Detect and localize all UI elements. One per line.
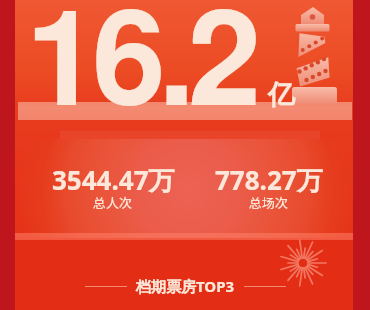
- staticText: 总人次: [93, 193, 133, 212]
- staticText: 778.27万: [215, 162, 323, 198]
- staticText: 档期票房TOP3: [136, 276, 235, 296]
- staticText: 总场次: [249, 193, 289, 212]
- staticText: 3544.47万: [52, 162, 175, 198]
- staticText: 16.2: [26, 0, 254, 145]
- staticText: 亿: [268, 78, 295, 112]
